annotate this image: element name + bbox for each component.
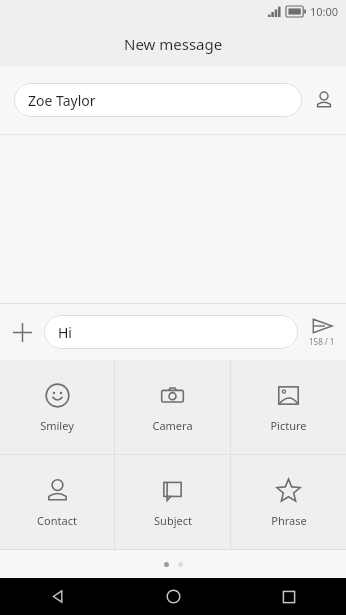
button[interactable]: Smiley xyxy=(0,360,114,454)
staticText: Contact xyxy=(37,513,77,528)
button[interactable]: Hi xyxy=(44,315,298,349)
staticText: Smiley xyxy=(40,418,74,433)
staticText: 158 / 1 xyxy=(309,336,335,347)
button[interactable]: Back xyxy=(0,578,116,615)
staticText: Picture xyxy=(270,418,307,433)
button[interactable]: Add contact xyxy=(302,66,346,134)
button[interactable]: Picture xyxy=(231,360,346,454)
button[interactable]: Camera xyxy=(115,360,230,454)
button[interactable]: Phrase xyxy=(231,455,346,549)
button[interactable]: Zoe Taylor xyxy=(14,83,302,117)
staticText: Phrase xyxy=(271,513,307,528)
staticText: New message xyxy=(124,34,223,54)
staticText: Camera xyxy=(152,418,193,433)
staticText: Hi xyxy=(58,323,72,342)
staticText: Subject xyxy=(154,513,192,528)
button[interactable]: Subject xyxy=(115,455,230,549)
staticText: 10:00 xyxy=(310,4,339,19)
button[interactable]: Home xyxy=(116,578,231,615)
button[interactable]: Recents xyxy=(231,578,346,615)
button[interactable]: Contact xyxy=(0,455,114,549)
button[interactable]: Add attachment xyxy=(0,304,44,360)
staticText: Zoe Taylor xyxy=(28,91,96,110)
button[interactable]: Send xyxy=(298,304,346,360)
